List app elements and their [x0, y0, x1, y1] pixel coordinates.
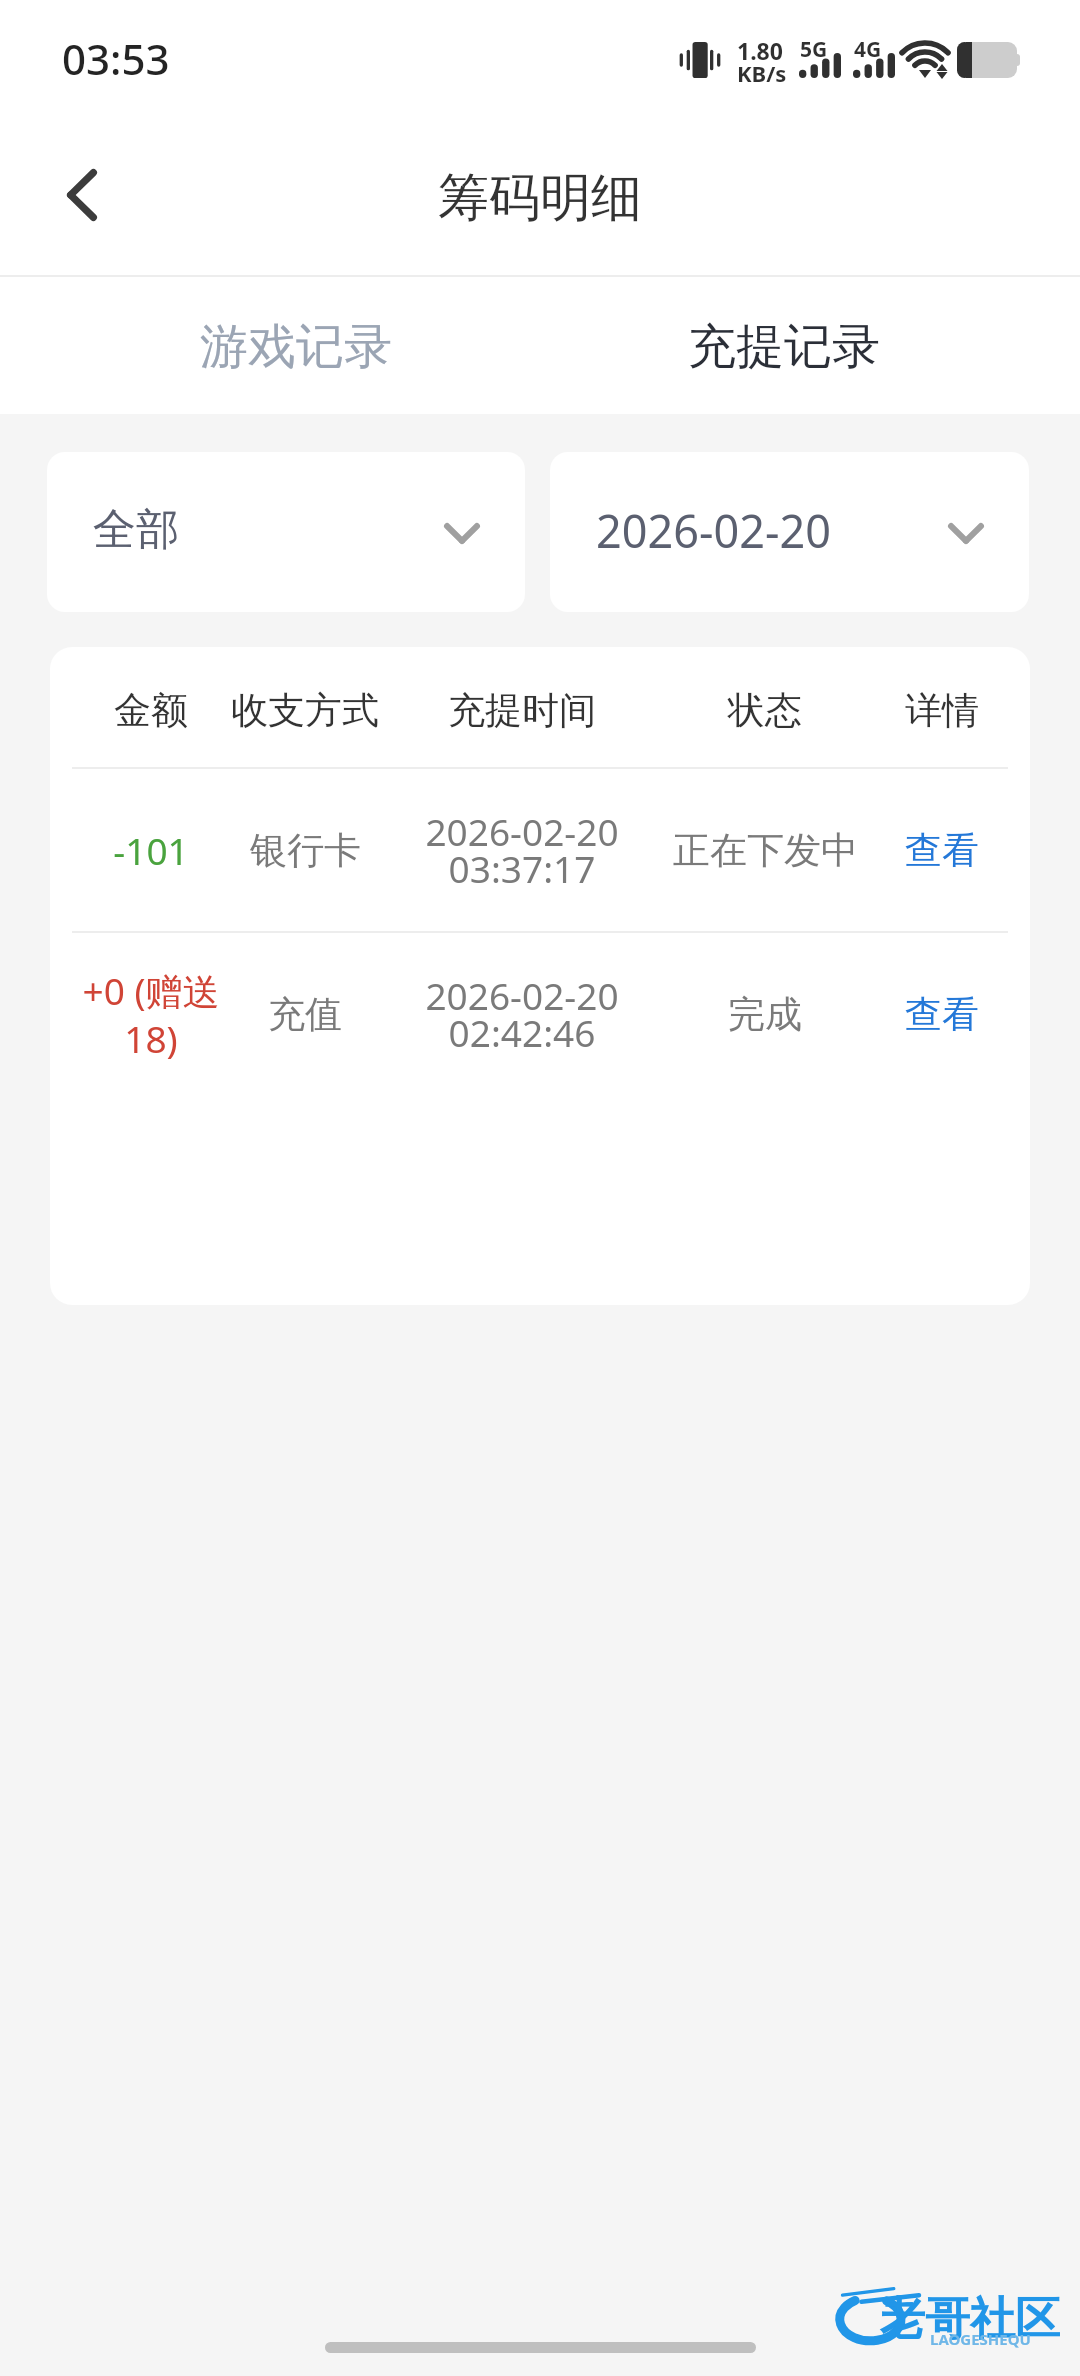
staticText: 收支方式 — [231, 687, 379, 734]
staticText: 金额 — [114, 687, 188, 734]
staticText: 查看 — [905, 827, 979, 874]
staticText: 03:53 — [62, 30, 170, 87]
staticText: +0 (赠送 18) — [61, 965, 241, 1064]
staticText: LAOGESHEQU — [930, 2329, 1031, 2349]
staticText: 4G — [854, 35, 882, 64]
staticText: 2026-02-20 — [596, 500, 831, 561]
staticText: 充提时间 — [448, 687, 596, 734]
staticText: 银行卡 — [250, 827, 361, 874]
button[interactable]: Back — [27, 140, 137, 250]
button[interactable]: 查看 — [862, 933, 1022, 1095]
staticText: 全部 — [93, 503, 179, 557]
staticText: 状态 — [728, 687, 802, 734]
staticText: 筹码明细 — [438, 166, 642, 230]
staticText: 2026-02-20 02:42:46 — [425, 970, 619, 1058]
staticText: 详情 — [905, 687, 979, 734]
staticText: 1.80 — [737, 35, 783, 66]
staticText: 2026-02-20 03:37:17 — [425, 806, 619, 894]
staticText: 游戏记录 — [200, 317, 392, 377]
staticText: 正在下发中 — [673, 827, 858, 874]
button[interactable]: 全部 — [47, 452, 525, 612]
staticText: KB/s — [737, 58, 787, 88]
staticText: -101 — [113, 825, 189, 875]
staticText: 老哥社区 — [880, 2291, 1060, 2348]
button[interactable]: 查看 — [862, 769, 1022, 931]
staticText: 充值 — [268, 991, 342, 1038]
staticText: 充提记录 — [688, 317, 880, 377]
button[interactable]: 2026-02-20 — [550, 452, 1029, 612]
button[interactable]: 游戏记录 — [176, 277, 416, 414]
staticText: 5G — [800, 35, 828, 64]
staticText: 查看 — [905, 991, 979, 1038]
button[interactable]: 充提记录 — [664, 277, 904, 414]
staticText: 完成 — [728, 991, 802, 1038]
